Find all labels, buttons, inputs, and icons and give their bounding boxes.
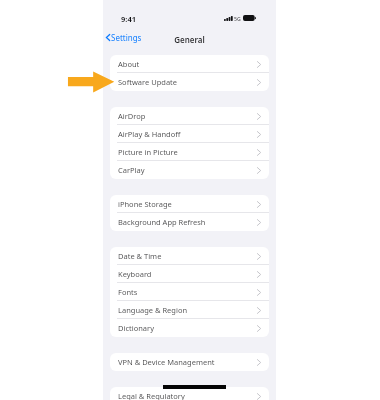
staticText: AirPlay & Handoff [118, 129, 181, 139]
button[interactable]: Legal & Regulatory [110, 387, 269, 400]
staticText: CarPlay [118, 165, 145, 175]
staticText: Background App Refresh [118, 217, 206, 227]
staticText: Date & Time [118, 251, 162, 261]
staticText: Language & Region [118, 305, 188, 315]
staticText: Dictionary [118, 323, 154, 333]
staticText: General [159, 34, 220, 45]
button[interactable]: CarPlay [110, 161, 269, 179]
button[interactable]: Fonts [110, 283, 269, 301]
staticText: Software Update [118, 77, 178, 87]
button[interactable]: Software Update [110, 73, 269, 91]
button[interactable]: Background App Refresh [110, 213, 269, 231]
button[interactable]: Dictionary [110, 319, 269, 337]
staticText: Picture in Picture [118, 147, 178, 157]
staticText: Legal & Regulatory [118, 391, 185, 400]
staticText: AirDrop [118, 111, 146, 121]
staticText: 9:41 [119, 14, 138, 24]
staticText: VPN & Device Management [118, 357, 215, 367]
staticText: iPhone Storage [118, 199, 172, 209]
staticText: Fonts [118, 287, 138, 297]
button[interactable]: AirDrop [110, 107, 269, 125]
staticText: 5G [234, 15, 241, 22]
button[interactable]: Date & Time [110, 247, 269, 265]
other: Pointer highlighting Software Update [67, 70, 115, 94]
button[interactable]: Keyboard [110, 265, 269, 283]
staticText: About [118, 59, 140, 69]
staticText: Keyboard [118, 269, 152, 279]
button[interactable]: Settings [104, 31, 146, 44]
button[interactable]: Picture in Picture [110, 143, 269, 161]
button[interactable]: VPN & Device Management [110, 353, 269, 371]
button[interactable]: About [110, 55, 269, 73]
button[interactable]: Language & Region [110, 301, 269, 319]
button[interactable]: iPhone Storage [110, 195, 269, 213]
button[interactable]: AirPlay & Handoff [110, 125, 269, 143]
staticText: Settings [111, 32, 142, 43]
